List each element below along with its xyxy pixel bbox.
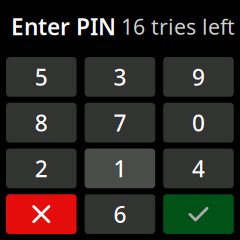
staticText: Enter PIN bbox=[11, 11, 116, 42]
staticText: 16 tries left bbox=[121, 12, 235, 41]
button[interactable]: 0 bbox=[163, 103, 234, 143]
button[interactable]: 4 bbox=[163, 148, 234, 188]
staticText: 9 bbox=[192, 62, 205, 92]
staticText: 8 bbox=[35, 108, 48, 138]
staticText: 1 bbox=[113, 153, 126, 183]
staticText: 3 bbox=[113, 62, 126, 92]
button[interactable]: Cancel bbox=[6, 194, 77, 234]
button[interactable]: 7 bbox=[85, 103, 155, 143]
button[interactable]: Confirm bbox=[163, 194, 234, 234]
button[interactable]: 1 bbox=[85, 148, 155, 188]
staticText: 6 bbox=[113, 199, 126, 229]
button[interactable]: 5 bbox=[6, 57, 77, 97]
button[interactable]: 6 bbox=[85, 194, 155, 234]
button[interactable]: 9 bbox=[163, 57, 234, 97]
button[interactable]: 8 bbox=[6, 103, 77, 143]
button[interactable]: 2 bbox=[6, 148, 77, 188]
button[interactable]: 3 bbox=[85, 57, 155, 97]
staticText: 2 bbox=[35, 153, 48, 183]
staticText: 4 bbox=[192, 153, 205, 183]
staticText: 5 bbox=[35, 62, 48, 92]
staticText: 7 bbox=[113, 108, 126, 138]
staticText: 0 bbox=[192, 108, 205, 138]
